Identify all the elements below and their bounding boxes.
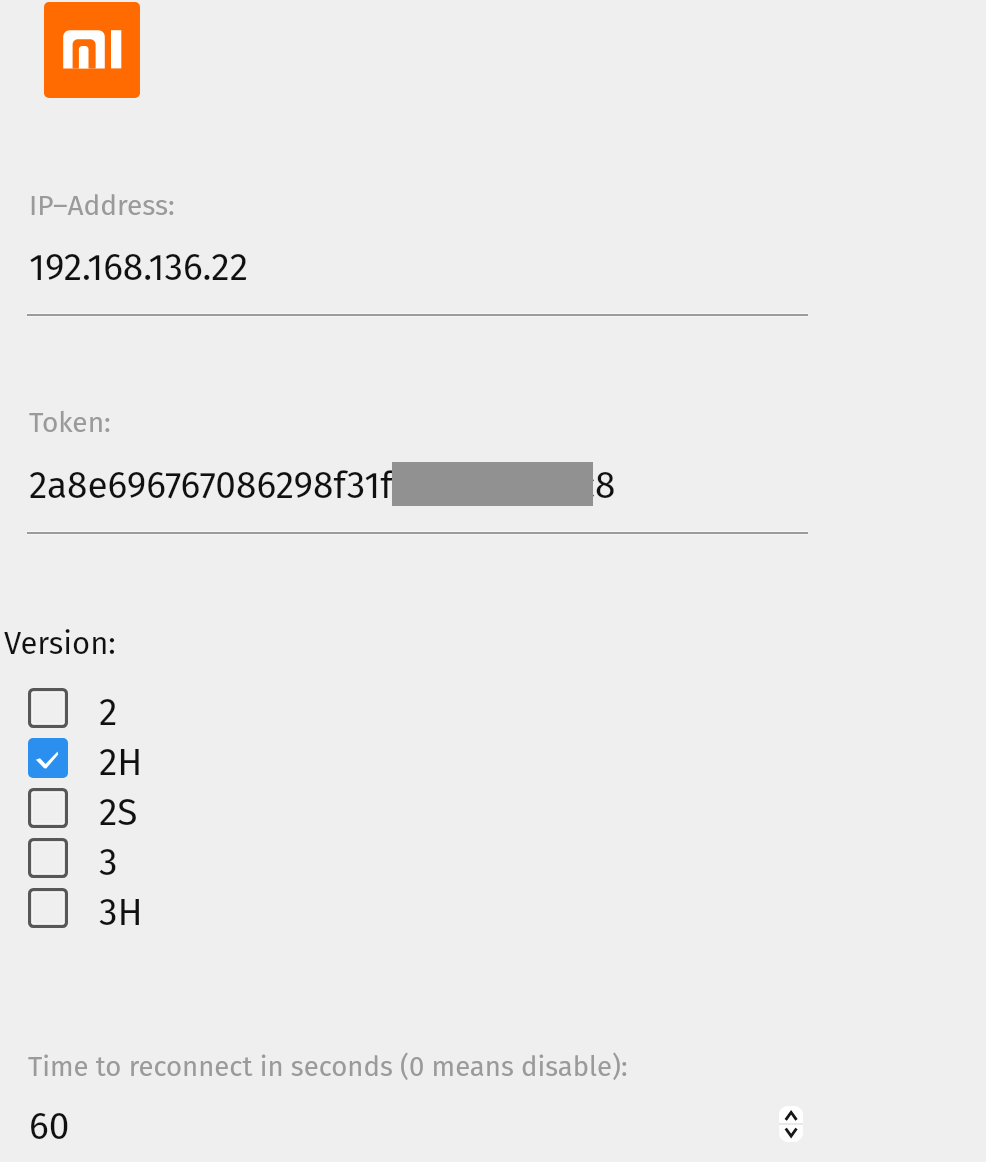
staticText: 2a8e696767086298f31f9bc7ae41e2c8 (29, 463, 616, 507)
staticText: 2 (99, 690, 118, 730)
button[interactable]: 3H (28, 888, 143, 928)
button[interactable]: Mi app icon (44, 2, 140, 98)
button[interactable]: 2H (28, 738, 143, 778)
staticText: 3H (99, 890, 143, 930)
button[interactable]: Increase or decrease seconds (779, 1106, 803, 1142)
staticText: 2S (99, 790, 138, 830)
staticText: IP–Address: (29, 189, 175, 223)
staticText: Token: (29, 406, 111, 440)
button[interactable]: 3 (28, 838, 118, 878)
staticText: 60 (29, 1104, 70, 1148)
staticText: Time to reconnect in seconds (0 means di… (28, 1050, 628, 1083)
staticText: 192.168.136.22 (29, 245, 248, 289)
button[interactable]: 2 (28, 688, 118, 728)
staticText: Version: (4, 625, 116, 662)
button[interactable]: 2S (28, 788, 138, 828)
staticText: 3 (99, 840, 118, 880)
staticText: 2H (99, 740, 143, 780)
